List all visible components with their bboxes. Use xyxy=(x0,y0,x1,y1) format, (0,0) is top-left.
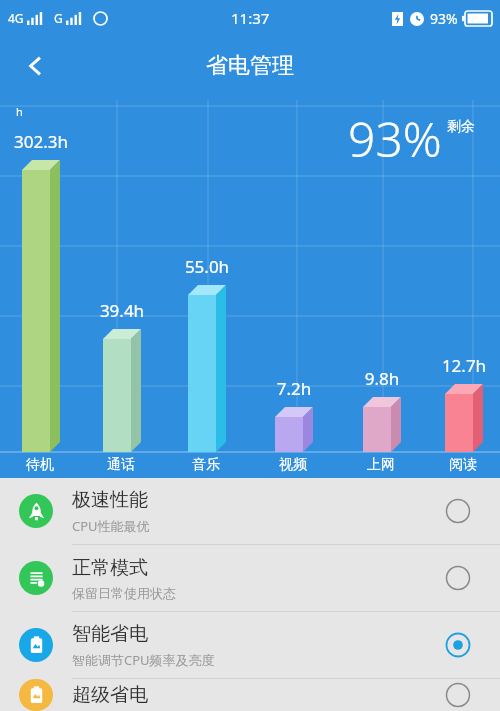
staticText: 55.0h xyxy=(172,255,242,278)
staticText: 智能省电 xyxy=(72,622,148,646)
staticText: h xyxy=(16,104,23,119)
staticText: 12.7h xyxy=(429,354,499,377)
staticText: 超级省电 xyxy=(72,683,148,707)
staticText: 7.2h xyxy=(259,377,329,400)
button[interactable]: 正常模式 xyxy=(0,545,500,612)
staticText: 上网 xyxy=(346,456,416,474)
staticText: 阅读 xyxy=(428,456,498,474)
staticText: G xyxy=(54,10,63,26)
staticText: CPU性能最优 xyxy=(72,517,150,535)
staticText: 保留日常使用状态 xyxy=(72,585,176,601)
button[interactable]: 极速性能 xyxy=(0,478,500,545)
staticText: 待机 xyxy=(5,456,75,474)
staticText: 极速性能 xyxy=(72,488,148,512)
staticText: 通话 xyxy=(86,456,156,474)
staticText: 音乐 xyxy=(171,456,241,474)
staticText: 93% xyxy=(430,9,458,28)
staticText: 93% xyxy=(348,106,442,171)
staticText: 智能调节CPU频率及亮度 xyxy=(72,651,215,669)
staticText: 39.4h xyxy=(87,299,157,322)
staticText: 4G xyxy=(8,10,24,26)
staticText: 省电管理 xyxy=(206,52,294,80)
button[interactable]: Back xyxy=(12,42,60,90)
staticText: 9.8h xyxy=(347,367,417,390)
staticText: 11:37 xyxy=(231,8,270,28)
button[interactable]: 超级省电 xyxy=(0,679,500,711)
button[interactable]: 智能省电 xyxy=(0,612,500,679)
staticText: 剩余 xyxy=(447,118,475,136)
staticText: 302.3h xyxy=(6,130,76,153)
staticText: 视频 xyxy=(258,456,328,474)
staticText: 正常模式 xyxy=(72,556,148,580)
